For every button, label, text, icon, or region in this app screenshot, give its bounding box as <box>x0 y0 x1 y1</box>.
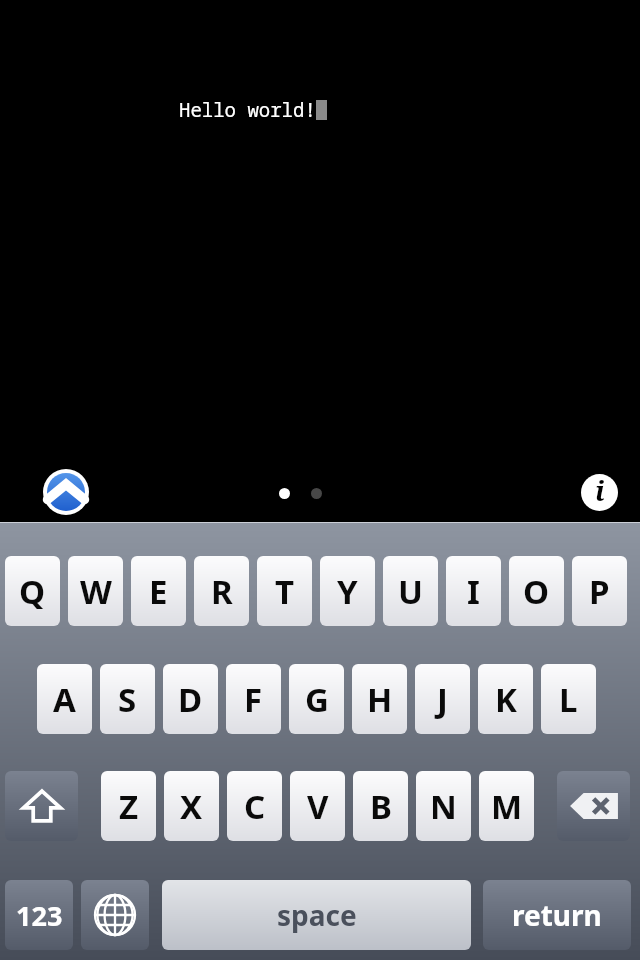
staticText: W <box>80 569 112 614</box>
button[interactable]: U <box>383 556 438 626</box>
button[interactable]: L <box>541 664 596 734</box>
staticText: B <box>370 784 392 829</box>
button[interactable]: K <box>478 664 533 734</box>
button[interactable]: M <box>479 771 534 841</box>
button[interactable]: V <box>290 771 345 841</box>
button[interactable]: D <box>163 664 218 734</box>
staticText: M <box>491 784 523 829</box>
staticText: N <box>430 784 457 829</box>
staticText: return <box>512 896 602 934</box>
button[interactable]: O <box>509 556 564 626</box>
staticText: Hello world! <box>179 97 316 123</box>
staticText: O <box>523 569 550 614</box>
staticText: 123 <box>16 897 63 934</box>
staticText: A <box>53 677 76 722</box>
staticText: G <box>305 677 329 722</box>
button[interactable]: H <box>352 664 407 734</box>
button[interactable]: 123 <box>5 880 73 950</box>
button[interactable]: C <box>227 771 282 841</box>
button[interactable]: return <box>483 880 631 950</box>
staticText: V <box>307 784 329 829</box>
button[interactable]: I <box>446 556 501 626</box>
staticText: I <box>467 569 480 614</box>
button[interactable]: R <box>194 556 249 626</box>
staticText: H <box>367 677 393 722</box>
button[interactable]: Backspace <box>557 771 630 841</box>
staticText: J <box>437 677 448 722</box>
staticText: K <box>495 677 517 722</box>
button[interactable]: W <box>68 556 123 626</box>
button[interactable]: X <box>164 771 219 841</box>
staticText: space <box>277 896 357 934</box>
button[interactable]: Info <box>581 474 618 511</box>
button[interactable]: F <box>226 664 281 734</box>
staticText: S <box>118 677 137 722</box>
button[interactable]: G <box>289 664 344 734</box>
button[interactable]: P <box>572 556 627 626</box>
button[interactable]: S <box>100 664 155 734</box>
button[interactable]: Expand <box>43 469 89 515</box>
button[interactable]: Shift <box>5 771 78 841</box>
button[interactable]: A <box>37 664 92 734</box>
staticText: Z <box>119 784 139 829</box>
button[interactable]: B <box>353 771 408 841</box>
button[interactable]: Y <box>320 556 375 626</box>
staticText: C <box>244 784 266 829</box>
staticText: E <box>149 569 168 614</box>
button[interactable]: space <box>162 880 471 950</box>
button[interactable]: Change keyboard <box>81 880 149 950</box>
button[interactable]: N <box>416 771 471 841</box>
staticText: Q <box>19 569 46 614</box>
staticText: R <box>211 569 233 614</box>
staticText: P <box>589 569 610 614</box>
staticText: Y <box>337 569 358 614</box>
staticText: D <box>178 677 203 722</box>
staticText: F <box>244 677 263 722</box>
staticText: X <box>180 784 203 829</box>
staticText: i <box>595 472 605 509</box>
staticText: U <box>398 569 423 614</box>
button[interactable]: E <box>131 556 186 626</box>
button[interactable]: Z <box>101 771 156 841</box>
button[interactable]: J <box>415 664 470 734</box>
button[interactable]: Q <box>5 556 60 626</box>
staticText: T <box>275 569 295 614</box>
button[interactable]: T <box>257 556 312 626</box>
staticText: L <box>559 677 578 722</box>
